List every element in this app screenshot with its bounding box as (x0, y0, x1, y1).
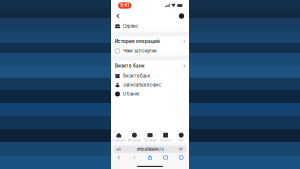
staticText: Визит в банк (123, 73, 150, 79)
staticText: Чат (179, 139, 184, 142)
button[interactable]: Каталог (158, 131, 173, 143)
button[interactable]: Главная (111, 131, 127, 143)
staticText: История операций (115, 39, 160, 44)
button[interactable]: Toolbar button (127, 153, 142, 162)
button[interactable]: Платежи (142, 131, 158, 143)
button[interactable]: История операций (111, 36, 189, 46)
staticText: Сервис (123, 24, 138, 29)
button[interactable]: Back (114, 11, 121, 20)
button[interactable]: Toolbar button (142, 153, 158, 162)
button[interactable]: Toolbar button (158, 153, 173, 162)
staticText: Главная (112, 139, 126, 142)
staticText: 9:41 (120, 3, 129, 8)
button[interactable]: Визит в банк (111, 71, 189, 80)
staticText: Чеки за покупки (123, 48, 157, 54)
staticText: История (128, 139, 141, 142)
staticText: О банке (123, 91, 139, 97)
staticText: Платежи (143, 139, 156, 142)
staticText: ᴀA (116, 147, 121, 151)
button[interactable]: Profile (177, 11, 185, 20)
button[interactable]: О банке (111, 89, 189, 98)
staticText: Каталог (160, 139, 172, 142)
button[interactable]: Чат (173, 131, 189, 143)
button[interactable]: Сервис (111, 21, 189, 31)
button[interactable]: Reload (177, 147, 185, 152)
button[interactable]: История (127, 131, 142, 143)
button[interactable]: Визит в банк (111, 60, 189, 71)
staticText: Записаться в офис (123, 82, 161, 88)
staticText: web.alfabank.ru (136, 147, 163, 152)
button[interactable]: Text size (115, 147, 123, 151)
button[interactable]: Toolbar button (111, 153, 127, 162)
staticText: Визит в банк (115, 63, 145, 69)
button[interactable]: Записаться в офис (111, 80, 189, 89)
button[interactable]: Чеки за покупки (111, 46, 189, 55)
staticText: ⟳ (179, 147, 183, 152)
button[interactable]: Toolbar button (173, 153, 189, 162)
